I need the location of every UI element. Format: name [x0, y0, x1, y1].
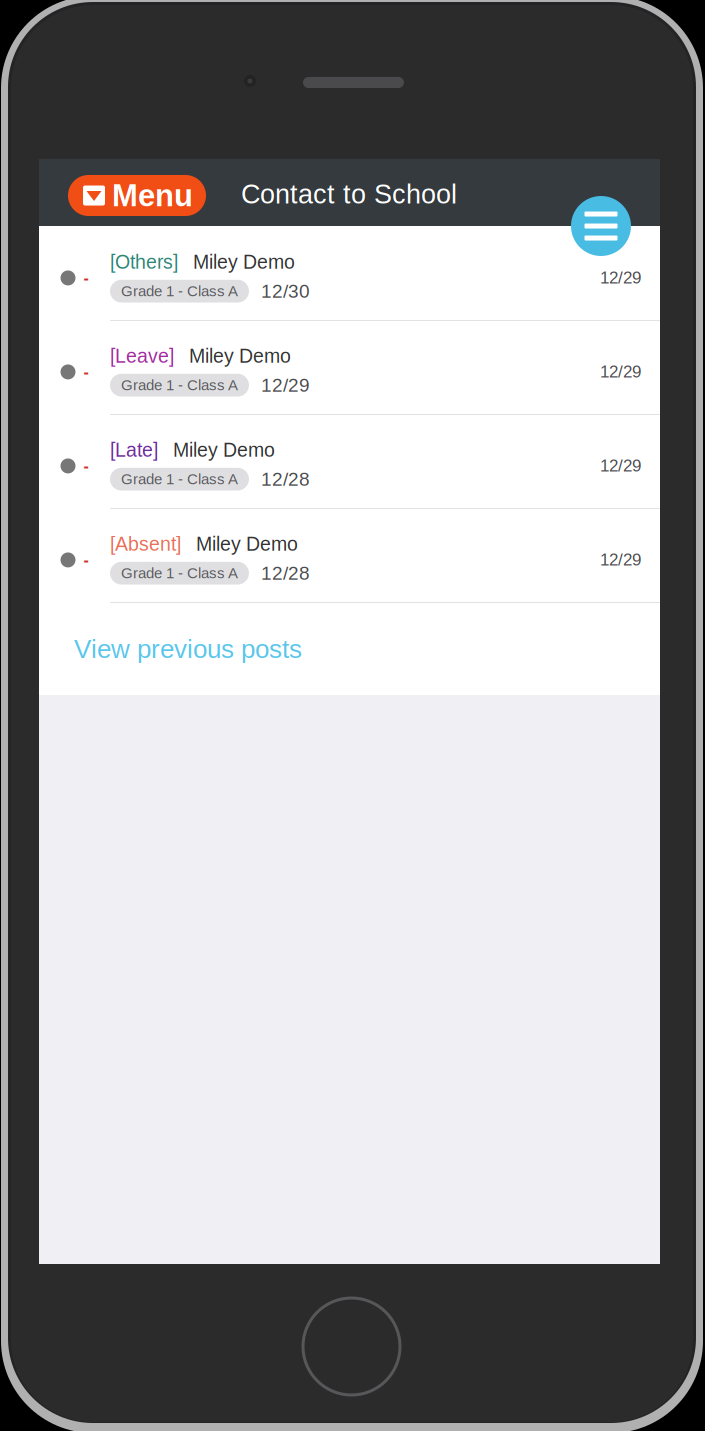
staticText: 12/29 — [600, 268, 641, 287]
staticText: Grade 1 - Class A — [121, 565, 238, 582]
staticText: Miley Demo — [189, 345, 291, 367]
staticText: Menu — [112, 178, 193, 213]
staticText: - — [83, 269, 88, 287]
staticText: Grade 1 - Class A — [121, 377, 238, 394]
staticText: Grade 1 - Class A — [121, 283, 238, 300]
button[interactable]: Menu — [571, 196, 631, 256]
staticText: 12/29 — [600, 550, 641, 569]
staticText: [Others] — [110, 251, 178, 273]
staticText: Grade 1 - Class A — [121, 471, 238, 488]
staticText: Miley Demo — [173, 439, 275, 461]
button[interactable]: View previous posts — [39, 603, 660, 695]
staticText: [Leave] — [110, 345, 174, 367]
staticText: Miley Demo — [193, 251, 295, 273]
staticText: 12/29 — [600, 456, 641, 475]
staticText: - — [83, 551, 88, 569]
staticText: Miley Demo — [196, 533, 298, 555]
staticText: - — [83, 457, 88, 475]
button[interactable]: Menu — [68, 175, 206, 216]
staticText: 12/30 — [261, 281, 310, 302]
staticText: 12/29 — [600, 362, 641, 381]
staticText: - — [83, 363, 88, 381]
staticText: View previous posts — [74, 634, 302, 663]
staticText: 12/29 — [261, 375, 310, 396]
staticText: 12/28 — [261, 469, 310, 490]
staticText: Contact to School — [241, 179, 457, 209]
staticText: [Late] — [110, 439, 158, 461]
staticText: 12/28 — [261, 563, 310, 584]
staticText: [Absent] — [110, 533, 181, 555]
